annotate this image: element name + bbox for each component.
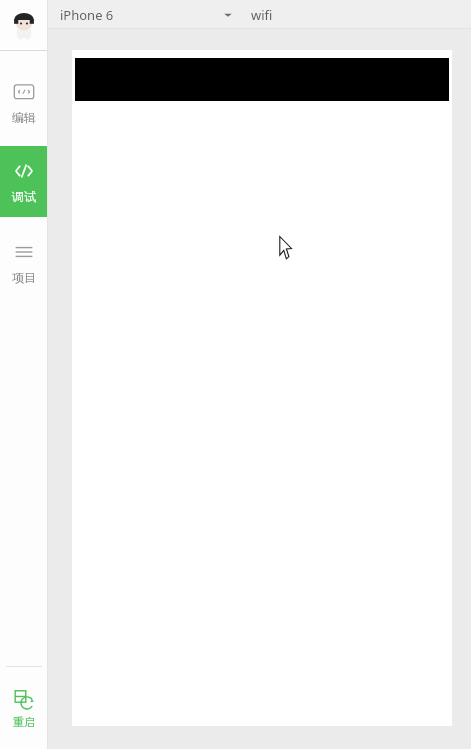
button[interactable]: Restart: [0, 685, 48, 733]
staticText: 重启: [13, 715, 35, 729]
button[interactable]: Edit: [0, 67, 48, 138]
staticText: 编辑: [12, 110, 36, 125]
button[interactable]: Debug: [0, 146, 48, 217]
staticText: wifi: [251, 6, 273, 24]
staticText: iPhone 6: [60, 6, 114, 24]
button[interactable]: Project: [0, 227, 48, 298]
button[interactable]: User avatar: [0, 0, 48, 50]
staticText: 调试: [12, 189, 36, 204]
other: Restart: [13, 689, 35, 711]
button[interactable]: wifi: [243, 6, 471, 24]
staticText: 项目: [12, 270, 36, 285]
button[interactable]: iPhone 6: [48, 6, 243, 24]
